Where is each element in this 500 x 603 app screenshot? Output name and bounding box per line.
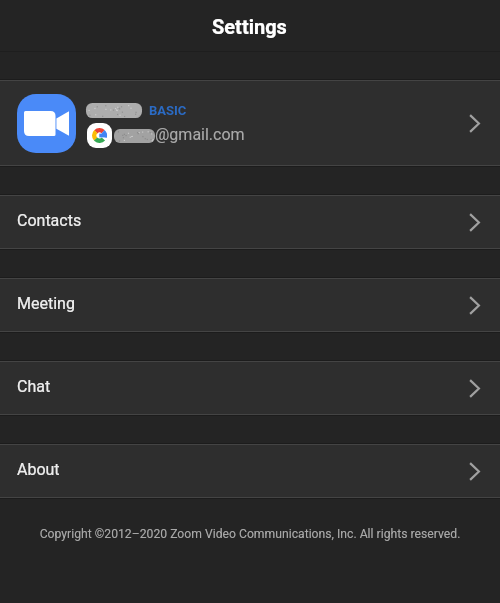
other: Open (469, 114, 480, 133)
button[interactable] (0, 277, 500, 333)
staticText: BASIC (149, 103, 187, 118)
staticText: Copyright ©2012–2020 Zoom Video Communic… (0, 527, 500, 541)
staticText: Settings (212, 15, 287, 38)
other: Open (469, 462, 480, 481)
staticText: Contacts (17, 211, 82, 230)
button[interactable] (0, 194, 500, 250)
button[interactable] (0, 360, 500, 416)
staticText: Chat (17, 377, 51, 396)
button[interactable] (0, 79, 500, 167)
other: Open (469, 296, 480, 315)
staticText: Meeting (17, 294, 75, 313)
other: Open (469, 379, 480, 398)
staticText: @gmail.com (155, 125, 245, 144)
other: Open (469, 213, 480, 232)
button[interactable] (0, 443, 500, 499)
staticText: About (17, 460, 60, 479)
